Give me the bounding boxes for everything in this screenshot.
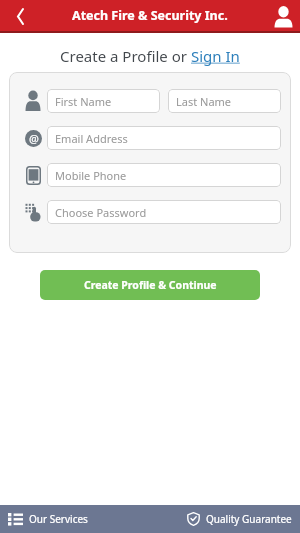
button[interactable]: Mobile Phone [55, 163, 281, 187]
button[interactable]: Quality Guarantee [187, 505, 292, 533]
button[interactable]: Last Name [176, 89, 281, 113]
button[interactable] [0, 0, 40, 33]
button[interactable]: Email Address [55, 126, 281, 150]
staticText: Last Name [176, 94, 232, 109]
button[interactable]: Sign In [191, 46, 240, 66]
staticText: Quality Guarantee [206, 512, 292, 526]
staticText: First Name [55, 94, 112, 109]
button[interactable]: Create Profile & Continue [40, 270, 260, 300]
staticText: Choose Password [55, 205, 147, 220]
staticText: Atech Fire & Security Inc. [72, 7, 228, 24]
button[interactable]: Our Services [8, 505, 88, 533]
staticText: Create Profile & Continue [84, 278, 217, 292]
staticText: Create a Profile or [60, 46, 191, 66]
button[interactable]: First Name [55, 89, 160, 113]
staticText: Email Address [55, 131, 128, 146]
staticText: Our Services [29, 512, 88, 526]
staticText: Mobile Phone [55, 168, 127, 183]
staticText: @ [29, 131, 39, 146]
button[interactable] [266, 0, 300, 33]
button[interactable]: Choose Password [55, 200, 281, 224]
